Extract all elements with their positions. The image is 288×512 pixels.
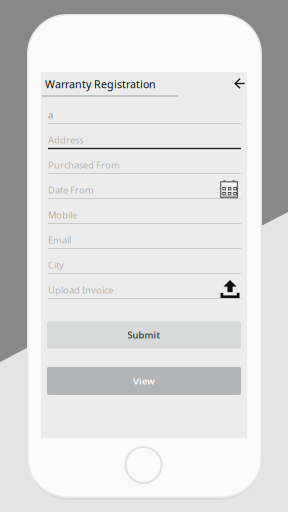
staticText: Mobile [48,209,77,221]
button[interactable]: Back [226,72,252,94]
button[interactable]: Submit [47,321,241,348]
button[interactable]: View [47,367,241,395]
staticText: Date From [48,184,94,196]
button[interactable]: Choose date [217,179,241,201]
staticText: Upload Invoice [48,284,113,296]
staticText: Warranty Registration [45,77,156,91]
staticText: Submit [127,329,160,341]
staticText: Purchased From [48,159,120,171]
staticText: View [133,375,155,387]
staticText: City [48,259,64,271]
staticText: Address [48,134,83,146]
staticText: a [48,109,53,121]
staticText: Email [48,234,71,246]
button[interactable]: Upload invoice [218,278,242,300]
